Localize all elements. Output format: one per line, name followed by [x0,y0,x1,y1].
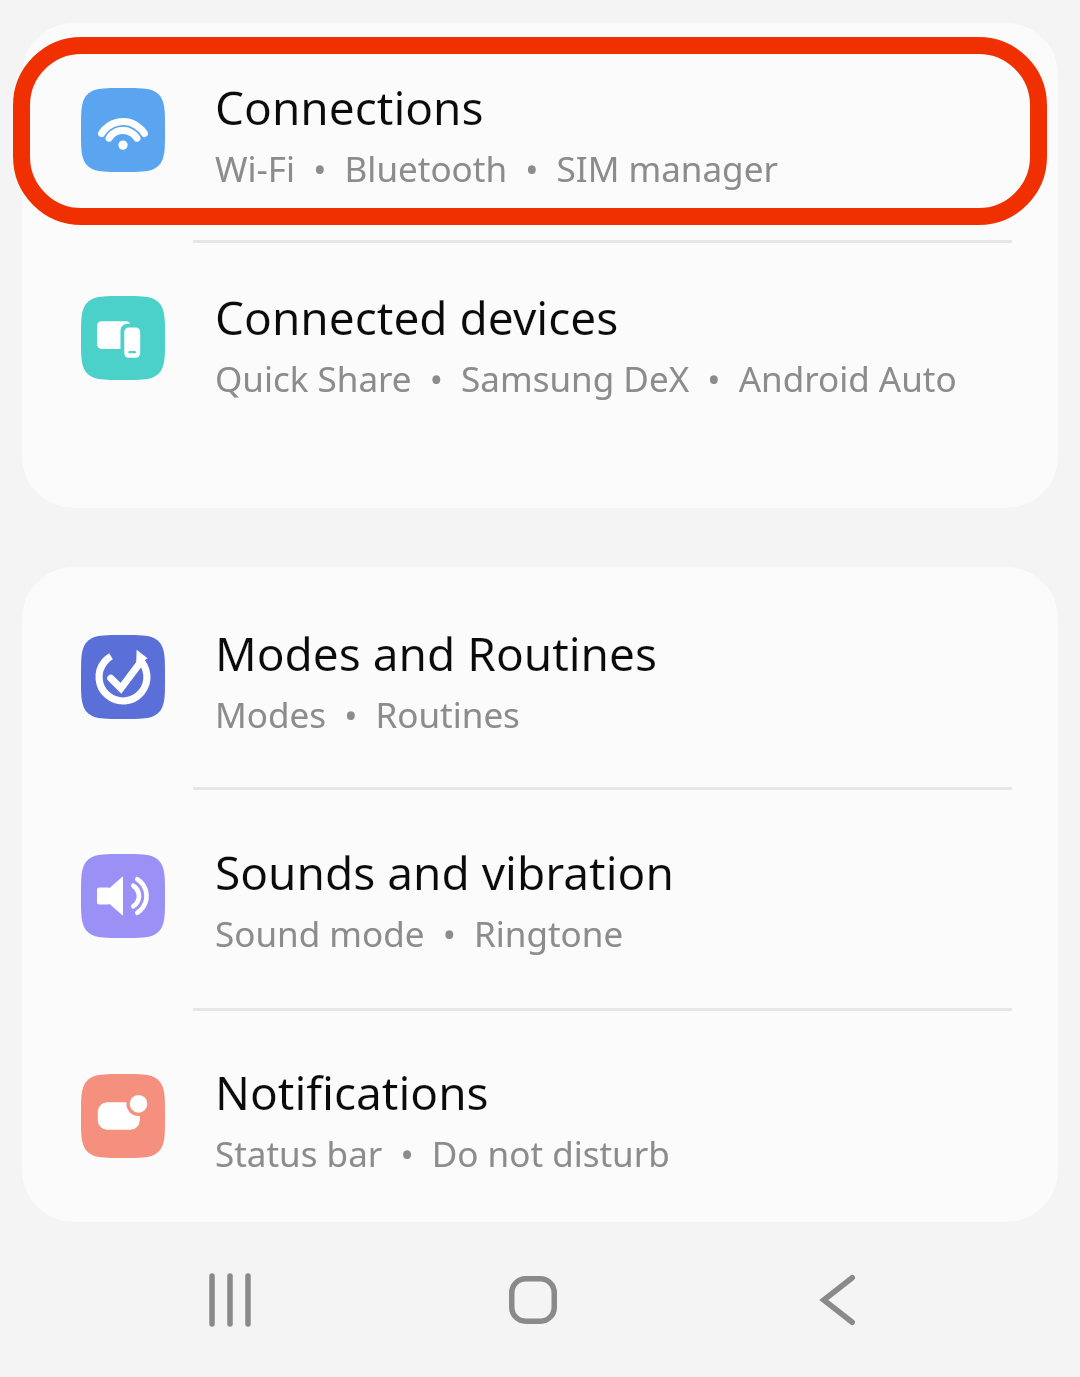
button[interactable]: Home [463,1246,603,1354]
staticText: Modes and Routines [215,622,658,685]
button[interactable]: Back [768,1246,908,1354]
staticText: Connected devices [215,286,619,349]
button[interactable]: Connected devices [22,243,1058,508]
staticText: Modes • Routines [215,691,520,739]
staticText: Quick Share • Samsung DeX • Android Auto [215,355,957,403]
staticText: Sounds and vibration [215,841,674,904]
staticText: Notifications [215,1061,489,1124]
button[interactable]: Sounds and vibration [22,790,1058,1008]
staticText: Wi-Fi • Bluetooth • SIM manager [215,145,778,193]
button[interactable]: Notifications [22,1011,1058,1222]
staticText: Connections [215,76,484,139]
staticText: Sound mode • Ringtone [215,910,624,958]
button[interactable]: Connections [22,23,1058,240]
staticText: Status bar • Do not disturb [215,1130,670,1178]
button[interactable]: Modes and Routines [22,567,1058,787]
button[interactable]: Recents [160,1246,300,1354]
